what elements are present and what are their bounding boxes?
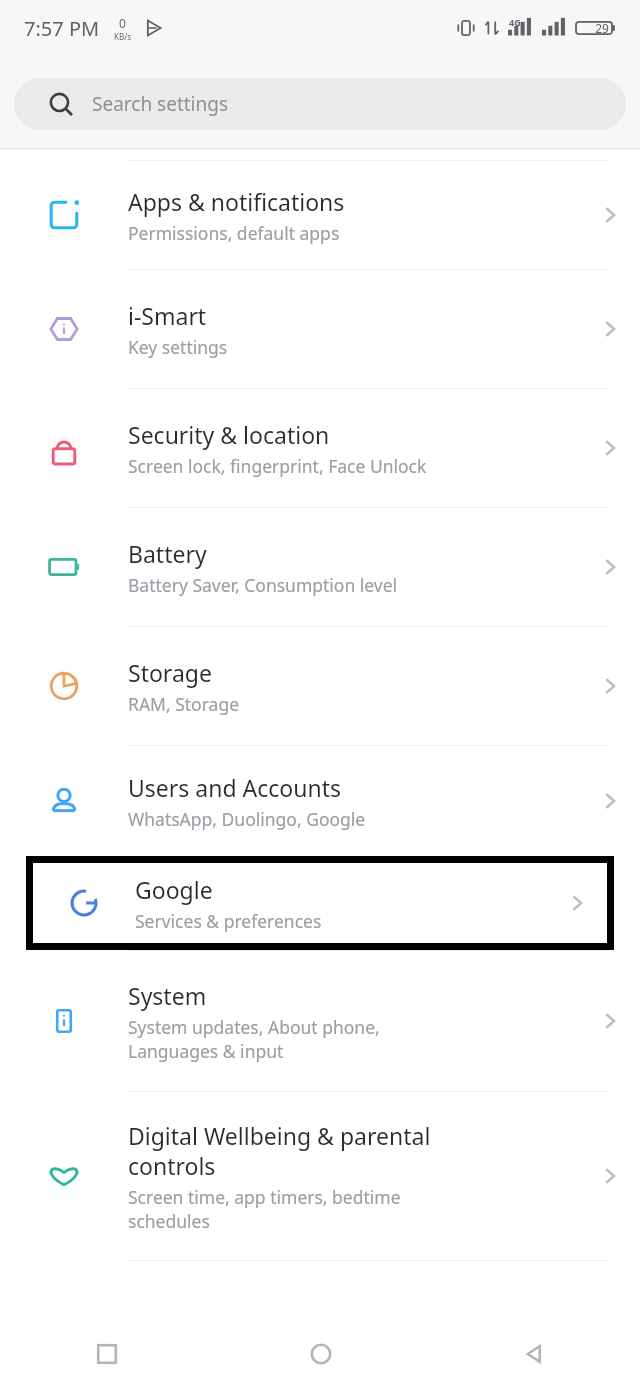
- button[interactable]: Security & location: [0, 389, 640, 507]
- button[interactable]: Search settings: [14, 78, 626, 130]
- staticText: Permissions, default apps: [128, 221, 340, 245]
- button[interactable]: Digital Wellbeing & parental controls: [0, 1092, 640, 1260]
- button[interactable]: Back: [427, 1320, 640, 1388]
- staticText: i-Smart: [128, 300, 207, 331]
- button[interactable]: System: [0, 951, 640, 1091]
- staticText: 0: [119, 15, 126, 31]
- button[interactable]: Google: [26, 856, 614, 950]
- staticText: Key settings: [128, 335, 228, 359]
- staticText: Search settings: [92, 91, 229, 117]
- staticText: Battery Saver, Consumption level: [128, 573, 398, 597]
- staticText: Screen time, app timers, bedtime schedul…: [128, 1185, 401, 1233]
- staticText: Users and Accounts: [128, 772, 341, 803]
- button[interactable]: Apps & notifications: [0, 161, 640, 269]
- staticText: Storage: [128, 657, 212, 688]
- staticText: Apps & notifications: [128, 186, 345, 217]
- staticText: WhatsApp, Duolingo, Google: [128, 807, 366, 831]
- button[interactable]: Storage: [0, 627, 640, 745]
- staticText: KB/s: [114, 31, 131, 42]
- button[interactable]: Battery: [0, 508, 640, 626]
- button[interactable]: i-Smart: [0, 270, 640, 388]
- staticText: Services & preferences: [135, 909, 322, 933]
- staticText: 7:57 PM: [24, 15, 100, 42]
- button[interactable]: Home: [214, 1320, 427, 1388]
- staticText: Security & location: [128, 419, 330, 450]
- staticText: System: [128, 980, 207, 1011]
- staticText: RAM, Storage: [128, 692, 240, 716]
- staticText: Digital Wellbeing & parental controls: [128, 1120, 431, 1181]
- staticText: 29: [595, 20, 609, 36]
- staticText: Screen lock, fingerprint, Face Unlock: [128, 454, 427, 478]
- staticText: Battery: [128, 538, 207, 569]
- staticText: Google: [135, 874, 213, 905]
- button[interactable]: Recent apps: [0, 1320, 214, 1388]
- staticText: System updates, About phone, Languages &…: [128, 1015, 380, 1063]
- staticText: 4G: [509, 16, 521, 28]
- button[interactable]: Users and Accounts: [0, 746, 640, 856]
